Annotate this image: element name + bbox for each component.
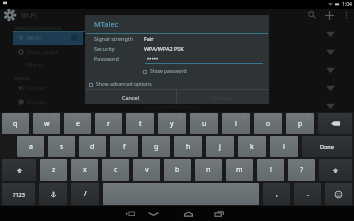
staticText: ? xyxy=(300,165,304,175)
button[interactable] xyxy=(0,97,335,115)
button[interactable]: ? xyxy=(288,159,315,181)
button[interactable]: / xyxy=(71,183,99,205)
button[interactable]: w xyxy=(33,113,60,134)
button[interactable]: l xyxy=(270,136,298,157)
button[interactable]: Hide keyboard xyxy=(125,208,136,219)
staticText: g xyxy=(154,142,159,152)
button[interactable]: Show advanced options xyxy=(89,81,152,88)
button[interactable]: i xyxy=(222,113,250,134)
button[interactable]: Home xyxy=(183,208,194,219)
staticText: p xyxy=(298,119,303,129)
staticText: MTalec xyxy=(94,19,119,29)
staticText: r xyxy=(107,119,110,129)
staticText: f xyxy=(123,142,126,152)
staticText: ••••• xyxy=(147,55,159,63)
button[interactable]: More options xyxy=(340,9,352,21)
button[interactable]: c xyxy=(102,159,129,181)
staticText: Security xyxy=(94,45,144,52)
button[interactable]: k xyxy=(238,136,266,157)
button[interactable]: f xyxy=(110,136,138,157)
button[interactable]: Show password xyxy=(143,68,187,75)
button[interactable]: z xyxy=(40,159,67,181)
staticText: 3 xyxy=(85,114,88,119)
button[interactable]: Voice input xyxy=(39,183,67,205)
staticText: 6 xyxy=(180,114,183,119)
staticText: u xyxy=(202,119,207,129)
button[interactable]: Backspace xyxy=(318,113,352,134)
staticText: v xyxy=(145,165,149,175)
button[interactable]: Display xyxy=(18,95,82,109)
button[interactable]: a xyxy=(17,136,44,157)
button[interactable]: Shift xyxy=(2,159,36,181)
button[interactable]: y xyxy=(158,113,186,134)
staticText: z xyxy=(52,165,56,175)
button[interactable]: o xyxy=(254,113,282,134)
staticText: e xyxy=(76,119,80,129)
staticText: WPA/WPA2 PSK xyxy=(144,45,184,52)
button[interactable]: ?123 xyxy=(2,183,35,205)
button[interactable]: h xyxy=(174,136,202,157)
staticText: Show password xyxy=(150,68,187,75)
staticText: . xyxy=(307,189,309,199)
button[interactable]: Space xyxy=(103,183,259,205)
button[interactable]: q xyxy=(2,113,29,134)
button[interactable]: n xyxy=(195,159,222,181)
button[interactable]: Add network xyxy=(322,9,336,21)
button[interactable] xyxy=(0,61,335,79)
staticText: Data usage xyxy=(27,48,59,56)
staticText: o xyxy=(266,119,271,129)
staticText: DEVICE xyxy=(15,76,30,81)
button[interactable]: Wi-Fi xyxy=(18,31,82,45)
staticText: d xyxy=(90,142,95,152)
button[interactable]: Done xyxy=(302,136,352,157)
staticText: w xyxy=(44,119,50,129)
staticText: b xyxy=(175,165,180,175)
button[interactable]: , xyxy=(263,183,290,205)
staticText: y xyxy=(170,119,174,129)
button[interactable]: e xyxy=(64,113,91,134)
button[interactable]: Recents xyxy=(214,208,225,219)
button[interactable]: b xyxy=(164,159,191,181)
staticText: ! xyxy=(270,165,272,175)
button[interactable]: Shift xyxy=(319,159,352,181)
button[interactable]: ! xyxy=(257,159,284,181)
button[interactable] xyxy=(0,43,335,61)
button[interactable]: Sound xyxy=(18,81,82,95)
staticText: Fair xyxy=(144,35,154,42)
button[interactable]: r xyxy=(95,113,122,134)
staticText: n xyxy=(206,165,211,175)
button[interactable]: d xyxy=(79,136,106,157)
button[interactable]: . xyxy=(294,183,321,205)
staticText: Cancel xyxy=(122,94,140,101)
button[interactable]: x xyxy=(71,159,98,181)
button[interactable] xyxy=(0,25,335,43)
staticText: 5 xyxy=(148,114,151,119)
button[interactable]: v xyxy=(133,159,160,181)
staticText: c xyxy=(114,165,118,175)
button[interactable]: Data usage xyxy=(18,45,82,59)
staticText: s xyxy=(60,142,64,152)
staticText: / xyxy=(84,189,87,199)
staticText: 8 xyxy=(244,114,247,119)
button[interactable]: m xyxy=(226,159,253,181)
button[interactable]: Back xyxy=(148,208,159,219)
staticText: q xyxy=(13,119,18,129)
button[interactable]: g xyxy=(142,136,170,157)
staticText: Signal strength xyxy=(94,35,144,42)
button[interactable] xyxy=(0,79,335,97)
button[interactable]: Emoji xyxy=(325,183,352,205)
button[interactable]: s xyxy=(48,136,75,157)
staticText: x xyxy=(83,165,87,175)
button[interactable]: j xyxy=(206,136,234,157)
button[interactable]: p xyxy=(286,113,314,134)
staticText: Done xyxy=(320,143,334,150)
button[interactable]: Cancel xyxy=(85,90,176,104)
button[interactable]: t xyxy=(126,113,154,134)
staticText: 7 xyxy=(212,114,215,119)
button[interactable]: Search xyxy=(305,9,319,21)
staticText: h xyxy=(186,142,191,152)
button[interactable]: u xyxy=(190,113,218,134)
